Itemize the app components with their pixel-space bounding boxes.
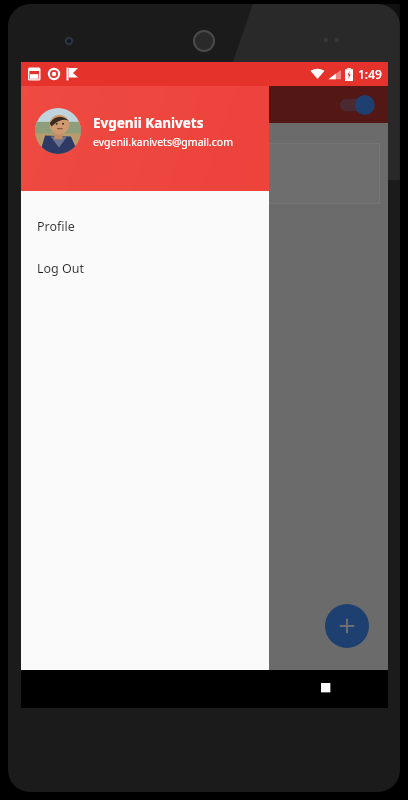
staticText: 1:49 bbox=[358, 66, 382, 82]
button[interactable]: Toggle magnets bbox=[340, 95, 374, 115]
staticText: Profile bbox=[37, 218, 75, 235]
staticText: evgenii.kanivets@gmail.com bbox=[93, 135, 233, 149]
button[interactable]: Log Out bbox=[21, 247, 269, 289]
button[interactable]: Evgenii Kanivets bbox=[29, 143, 380, 204]
staticText: Log Out bbox=[37, 260, 85, 277]
staticText: Evgenii Kanivets bbox=[93, 114, 204, 132]
button[interactable]: Profile bbox=[21, 205, 269, 247]
button[interactable]: Recent apps bbox=[266, 670, 388, 708]
staticText: My Magnets bbox=[35, 95, 124, 115]
button[interactable]: Add magnet bbox=[325, 604, 369, 648]
